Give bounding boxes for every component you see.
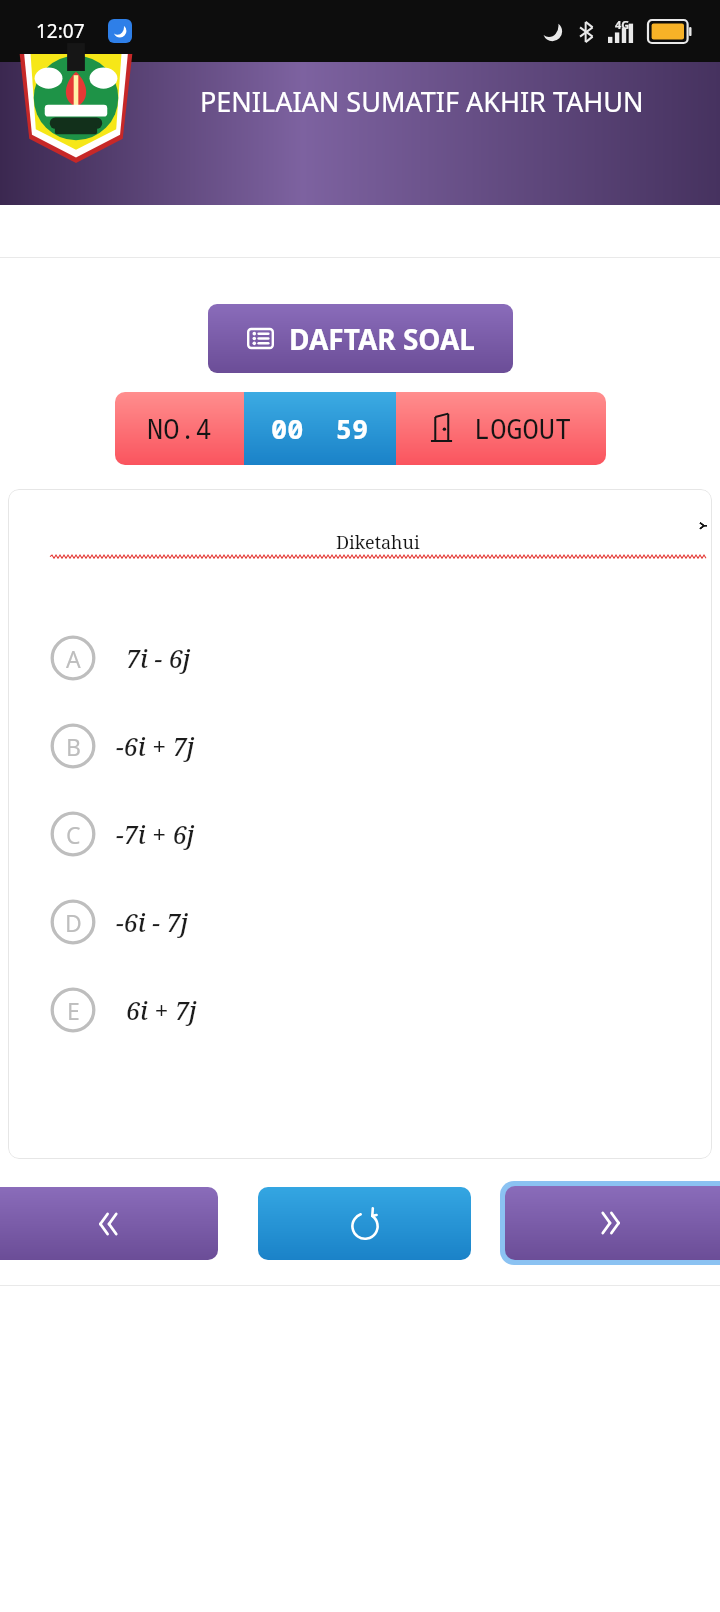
- staticText: D: [65, 907, 82, 938]
- staticText: E: [67, 995, 80, 1026]
- button[interactable]: NO.4: [115, 392, 244, 465]
- staticText: DAFTAR SOAL: [289, 320, 475, 358]
- staticText: A: [66, 643, 81, 674]
- staticText: 7i − 6j: [126, 641, 191, 675]
- button[interactable]: C: [8, 811, 712, 857]
- button[interactable]: A: [8, 635, 712, 681]
- staticText: PENILAIAN SUMATIF AKHIR TAHUN: [200, 83, 644, 120]
- staticText: −6i + 7j: [116, 729, 195, 763]
- staticText: Diketahui: [336, 530, 420, 555]
- staticText: 00 59: [271, 410, 369, 447]
- staticText: 12:07: [36, 18, 85, 44]
- staticText: B: [66, 731, 81, 762]
- staticText: −7i + 6j: [116, 817, 195, 851]
- button[interactable]: Next question: [500, 1181, 720, 1265]
- staticText: −6i − 7j: [116, 905, 189, 939]
- staticText: LOGOUT: [474, 410, 572, 447]
- staticText: NO.4: [147, 410, 212, 447]
- button[interactable]: E: [8, 987, 712, 1033]
- button[interactable]: Reload question: [258, 1187, 471, 1260]
- staticText: C: [66, 819, 81, 850]
- button[interactable]: LOGOUT: [396, 392, 606, 465]
- button[interactable]: Previous question: [0, 1187, 218, 1260]
- button[interactable]: D: [8, 899, 712, 945]
- button[interactable]: DAFTAR SOAL: [208, 304, 513, 373]
- staticText: 6i + 7j: [126, 993, 197, 1027]
- button[interactable]: B: [8, 723, 712, 769]
- staticText: 4G: [615, 17, 630, 32]
